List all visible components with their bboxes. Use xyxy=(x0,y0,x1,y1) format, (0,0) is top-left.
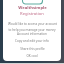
staticText: OK cool xyxy=(26,54,38,58)
staticText: Copy and edit your info xyxy=(15,39,49,43)
staticText: to help you manage your money xyxy=(8,28,56,32)
staticText: Share this profile xyxy=(20,47,45,51)
staticText: Wealthsimple xyxy=(18,5,47,11)
staticText: Registration xyxy=(20,11,44,17)
staticText: Account information xyxy=(17,32,47,36)
staticText: Would like to access your account xyxy=(8,22,57,26)
